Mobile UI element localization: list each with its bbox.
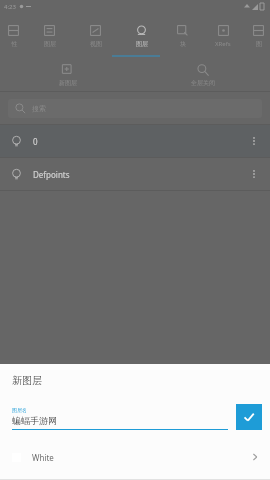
staticText: 块: [180, 40, 186, 48]
staticText: 全层关闭: [191, 79, 215, 87]
staticText: Defpoints: [33, 169, 70, 180]
button[interactable]: 0: [0, 125, 270, 157]
button[interactable]: 图: [246, 13, 270, 58]
button[interactable]: 图层: [26, 13, 72, 58]
staticText: 4:23: [4, 3, 16, 11]
button[interactable]: 图层: [118, 13, 164, 58]
button[interactable]: 性: [0, 13, 26, 58]
staticText: 0: [33, 136, 38, 147]
staticText: White: [32, 452, 54, 463]
staticText: 图层: [44, 40, 56, 48]
button[interactable]: 图层名: [12, 407, 228, 430]
button[interactable]: 更多选项: [247, 134, 261, 148]
staticText: 性: [11, 40, 17, 48]
button[interactable]: 块: [164, 13, 200, 58]
button[interactable]: XRefs: [200, 13, 246, 58]
staticText: 新图层: [12, 374, 42, 387]
staticText: 图层: [136, 40, 148, 48]
staticText: 新图层: [59, 79, 77, 87]
button[interactable]: Defpoints: [0, 158, 270, 190]
button[interactable]: 全层关闭: [135, 58, 270, 91]
staticText: 搜索: [32, 104, 46, 113]
button[interactable]: 新图层: [0, 58, 135, 91]
staticText: 视图: [90, 40, 102, 48]
staticText: 蝙蝠手游网: [12, 415, 57, 426]
staticText: 图: [256, 40, 262, 48]
button[interactable]: 确定: [236, 404, 262, 430]
button[interactable]: White: [0, 444, 270, 470]
button[interactable]: 视图: [72, 13, 118, 58]
button[interactable]: 更多选项: [247, 167, 261, 181]
staticText: 图层名: [12, 407, 27, 413]
staticText: XRefs: [215, 40, 231, 48]
